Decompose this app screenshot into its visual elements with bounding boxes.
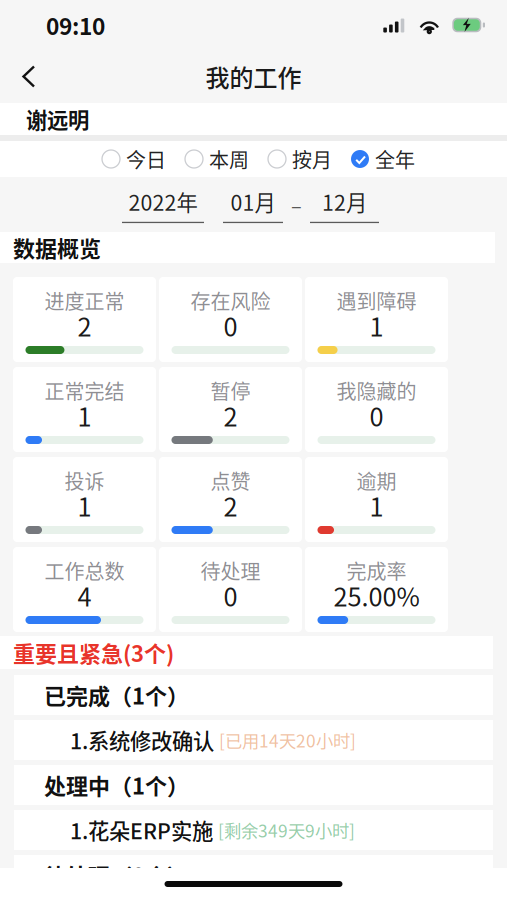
staticText: 按月 [292, 144, 332, 173]
button[interactable]: 正常完结 [13, 367, 156, 452]
staticText: 完成率 [346, 556, 406, 585]
button[interactable]: 点赞 [159, 457, 302, 542]
button[interactable]: 1.花朵ERP实施 [14, 810, 493, 850]
staticText: 进度正常 [44, 286, 124, 315]
staticText: 存在风险 [190, 286, 270, 315]
staticText: 已完成（1个） [44, 679, 189, 711]
staticText: 谢远明 [26, 104, 89, 134]
staticText: 待处理 [200, 556, 260, 585]
staticText: 投诉 [64, 466, 104, 495]
staticText: 1 [77, 397, 91, 434]
staticText: 25.00% [333, 577, 419, 614]
button[interactable]: 2022年 [122, 186, 204, 223]
staticText: 0 [223, 577, 237, 614]
button[interactable]: 进度正常 [13, 277, 156, 362]
staticText: 正常完结 [44, 376, 124, 405]
button[interactable]: 完成率 [305, 547, 448, 632]
button[interactable]: 逾期 [305, 457, 448, 542]
button[interactable]: 12月 [310, 186, 379, 223]
button[interactable]: 暂停 [159, 367, 302, 452]
staticText: 2 [77, 307, 91, 344]
staticText: 今日 [126, 144, 166, 173]
staticText: 2 [223, 397, 237, 434]
staticText: 1.系统修改确认 [70, 725, 214, 755]
button[interactable]: 全年 [351, 144, 415, 173]
staticText: 1 [369, 307, 383, 344]
staticText: 01月 [230, 186, 275, 217]
staticText: 本周 [209, 144, 249, 173]
staticText: 暂停 [210, 376, 250, 405]
button[interactable]: 已完成（1个） [14, 675, 493, 715]
staticText: 工作总数 [44, 556, 124, 585]
staticText: 4 [77, 577, 91, 614]
button[interactable]: 投诉 [13, 457, 156, 542]
staticText: 重要且紧急(3个) [13, 637, 174, 668]
staticText: 数据概览 [13, 232, 101, 263]
button[interactable]: 待处理（0个） [14, 855, 493, 895]
button[interactable]: 1.系统修改确认 [14, 720, 493, 760]
staticText: 2 [223, 487, 237, 524]
button[interactable]: 处理中（1个） [14, 765, 493, 805]
button[interactable]: 01月 [223, 186, 283, 223]
button[interactable]: 按月 [268, 144, 332, 173]
button[interactable]: 重要且紧急(3个) [0, 636, 493, 669]
button[interactable]: 存在风险 [159, 277, 302, 362]
staticText: 待处理（0个） [44, 859, 189, 891]
staticText: 09:10 [46, 9, 105, 41]
button[interactable]: 今日 [102, 144, 166, 173]
staticText: 0 [369, 397, 383, 434]
staticText: 遇到障碍 [336, 286, 416, 315]
button[interactable]: 我隐藏的 [305, 367, 448, 452]
staticText: 1 [77, 487, 91, 524]
staticText: 逾期 [356, 466, 396, 495]
staticText: 1.花朵ERP实施 [70, 815, 213, 845]
staticText: 2022年 [128, 186, 197, 217]
staticText: 全年 [375, 144, 415, 173]
button[interactable]: 遇到障碍 [305, 277, 448, 362]
staticText: – [291, 190, 302, 219]
staticText: 0 [223, 307, 237, 344]
staticText: [剩余349天9小时] [218, 817, 355, 843]
staticText: 处理中（1个） [44, 769, 189, 801]
button[interactable]: 工作总数 [13, 547, 156, 632]
staticText: 我的工作 [205, 59, 301, 94]
staticText: 12月 [322, 186, 367, 217]
staticText: [已用14天20小时] [219, 727, 356, 753]
staticText: 1 [369, 487, 383, 524]
button[interactable]: Back [0, 51, 54, 101]
staticText: 点赞 [210, 466, 250, 495]
button[interactable]: 本周 [185, 144, 249, 173]
staticText: 我隐藏的 [336, 376, 416, 405]
button[interactable]: 待处理 [159, 547, 302, 632]
